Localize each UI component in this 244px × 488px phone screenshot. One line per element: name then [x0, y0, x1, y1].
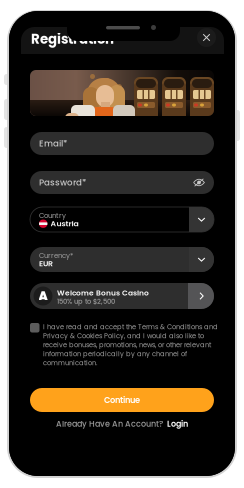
staticText: Login: [167, 418, 188, 430]
button[interactable]: A: [30, 283, 214, 309]
staticText: Welcome Bonus Casino: [57, 288, 149, 298]
staticText: information periodically by any channel …: [43, 349, 187, 359]
staticText: Already Have An Account?: [56, 418, 163, 430]
button[interactable]: Country: [30, 207, 214, 232]
button[interactable]: Continue: [30, 388, 214, 412]
staticText: Austria: [50, 218, 78, 229]
staticText: receive bonuses, promotions, news, or ot…: [43, 340, 211, 350]
staticText: Registration: [31, 30, 114, 48]
staticText: I have read and accept the Terms & Condi…: [43, 322, 218, 332]
button[interactable]: Currency*: [30, 247, 214, 272]
staticText: Password*: [39, 176, 86, 188]
staticText: communication.: [43, 358, 97, 368]
staticText: EUR: [39, 258, 53, 269]
staticText: A: [38, 288, 47, 304]
staticText: Currency*: [39, 251, 73, 260]
button[interactable]: Login: [167, 418, 188, 430]
staticText: 150% up to $2,500: [57, 297, 115, 306]
button[interactable]: Email*: [30, 132, 214, 155]
button[interactable]: Close: [197, 28, 216, 47]
staticText: Continue: [104, 394, 140, 406]
button[interactable]: Password*: [30, 171, 214, 194]
staticText: Email*: [39, 137, 67, 149]
staticText: Country: [39, 211, 66, 220]
button[interactable]: Accept terms and conditions: [30, 319, 39, 328]
staticText: Privacy & Cookies Policy, and I would al…: [43, 331, 204, 341]
